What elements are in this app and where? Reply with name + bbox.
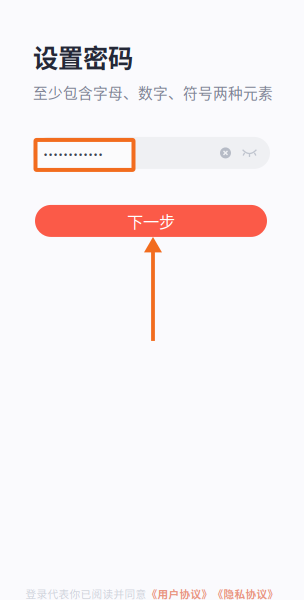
- button[interactable]: Show password: [231, 148, 270, 158]
- button[interactable]: Clear: [220, 147, 231, 158]
- staticText: 《隐私协议》: [212, 586, 278, 600]
- staticText: 《用户协议》: [146, 586, 212, 600]
- staticText: ••••••••••••: [43, 150, 103, 160]
- staticText: 至少包含字母、数字、符号两种元素: [33, 82, 273, 103]
- button[interactable]: 下一步: [35, 205, 267, 237]
- button[interactable]: 《隐私协议》: [212, 586, 278, 600]
- button[interactable]: 《用户协议》: [146, 586, 212, 600]
- staticText: 下一步: [127, 209, 175, 233]
- staticText: 设置密码: [33, 38, 133, 75]
- staticText: 登录代表你已阅读并同意: [25, 586, 146, 600]
